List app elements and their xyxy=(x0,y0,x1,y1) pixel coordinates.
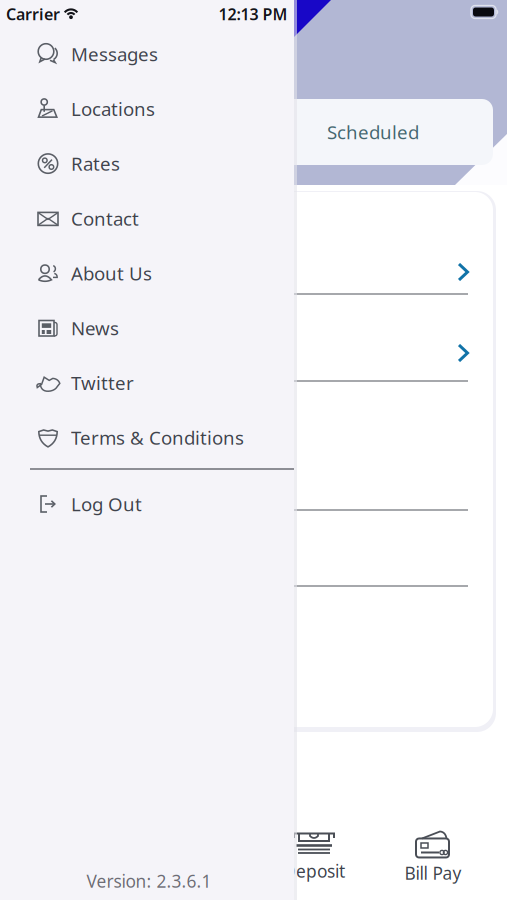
button[interactable]: Locations xyxy=(0,82,294,136)
staticText: Carrier xyxy=(6,3,60,25)
button[interactable]: Twitter xyxy=(0,356,294,410)
staticText: Terms & Conditions xyxy=(71,425,244,450)
button[interactable]: Contact xyxy=(0,191,294,245)
staticText: Messages xyxy=(71,42,158,66)
button[interactable]: Rates xyxy=(0,137,294,191)
staticText: Contact xyxy=(71,206,139,231)
staticText: Version: 2.3.6.1 xyxy=(86,869,211,892)
staticText: News xyxy=(71,316,119,340)
button[interactable]: Deposit xyxy=(259,827,369,885)
button[interactable]: About Us xyxy=(0,246,294,300)
button[interactable]: Select to account xyxy=(280,339,480,367)
staticText: Log Out xyxy=(71,492,142,516)
button[interactable]: Scheduled xyxy=(15,99,493,165)
button[interactable]: Select from account xyxy=(280,258,480,286)
staticText: Twitter xyxy=(71,370,134,395)
staticText: 12:13 PM xyxy=(218,3,287,25)
staticText: Deposit xyxy=(283,859,345,882)
button[interactable]: Terms & Conditions xyxy=(0,411,294,465)
staticText: Rates xyxy=(71,151,120,176)
staticText: Bill Pay xyxy=(404,861,461,884)
button[interactable]: News xyxy=(0,301,294,355)
button[interactable]: Log Out xyxy=(0,477,294,531)
button[interactable]: Bill Pay xyxy=(378,827,488,885)
staticText: About Us xyxy=(71,261,152,286)
staticText: Locations xyxy=(71,96,155,121)
staticText: Scheduled xyxy=(327,120,419,144)
button[interactable]: Messages xyxy=(0,27,294,81)
